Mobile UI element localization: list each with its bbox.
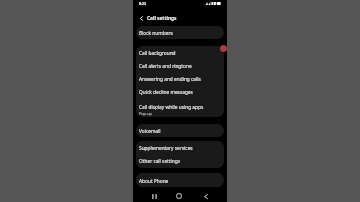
staticText: Other call settings <box>139 158 181 165</box>
staticText: About Phone <box>139 178 169 185</box>
staticText: Call display while using apps <box>139 104 204 111</box>
button[interactable]: Other call settings <box>136 154 224 167</box>
staticText: Supplementary services <box>139 145 193 152</box>
staticText: Quick decline messages <box>139 89 193 96</box>
button[interactable]: Voicemail <box>136 124 224 137</box>
button[interactable]: Supplementary services <box>136 141 224 154</box>
button[interactable]: Call background <box>136 46 224 59</box>
button[interactable]: About Phone <box>136 173 224 187</box>
button[interactable]: Call display while using apps <box>136 98 224 117</box>
button[interactable]: Call alerts and ringtone <box>136 59 224 72</box>
staticText: Call alerts and ringtone <box>139 63 192 70</box>
staticText: 8:23 <box>139 1 147 6</box>
staticText: Voicemail <box>139 128 161 135</box>
button[interactable]: Back <box>199 189 213 202</box>
button[interactable]: Quick decline messages <box>136 85 224 98</box>
staticText: Pop-up <box>139 111 152 116</box>
button[interactable]: Answering and ending calls <box>136 72 224 85</box>
staticText: Call settings <box>147 15 177 22</box>
button[interactable]: Recent apps <box>147 189 161 202</box>
button[interactable]: Block numbers <box>136 26 224 39</box>
staticText: Answering and ending calls <box>139 76 201 83</box>
staticText: Call background <box>139 50 176 57</box>
button[interactable]: Home <box>172 189 186 202</box>
button[interactable]: Back <box>136 13 147 24</box>
staticText: Block numbers <box>139 30 173 37</box>
